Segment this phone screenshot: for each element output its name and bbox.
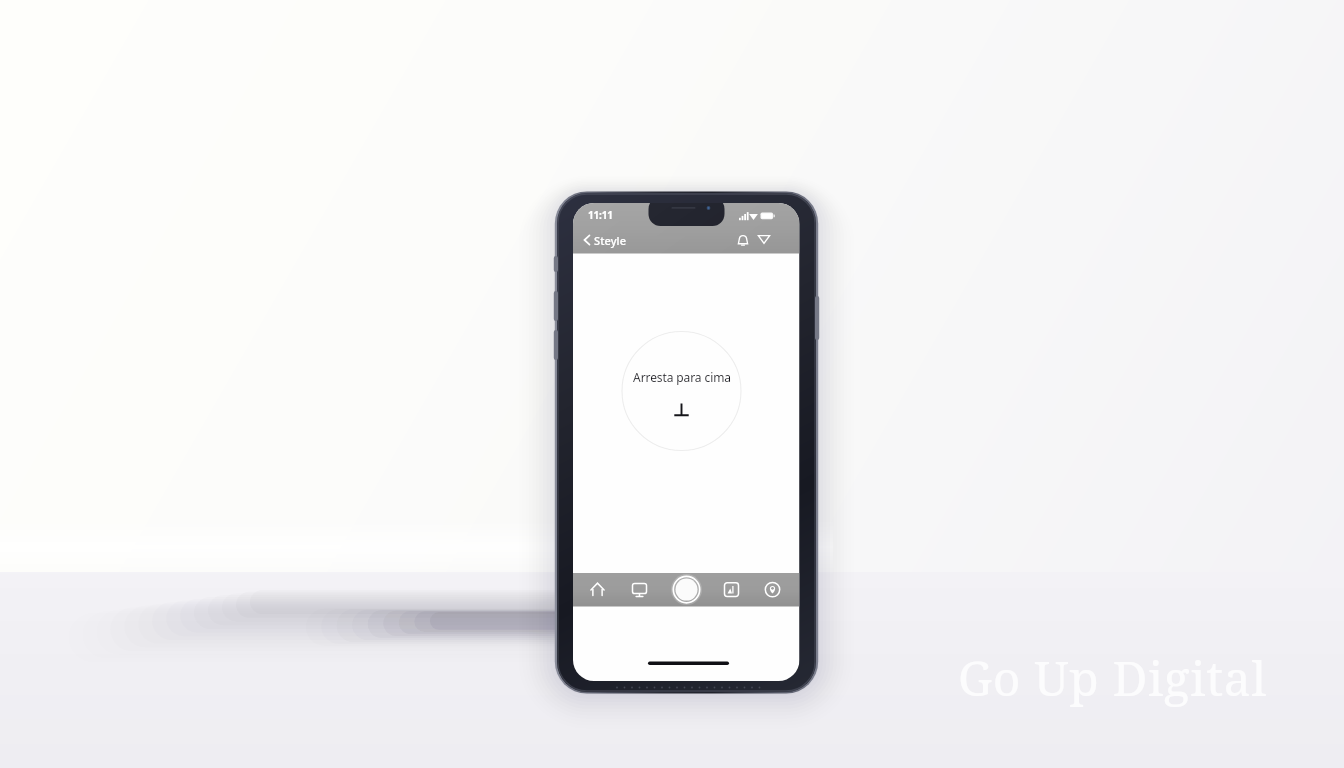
button[interactable]: Notificações <box>734 230 753 250</box>
staticText: Arresta para cima <box>633 369 731 385</box>
button[interactable]: Transmitir <box>626 573 660 607</box>
staticText: 11:11 <box>588 208 613 222</box>
button[interactable]: Galeria <box>713 573 747 607</box>
staticText: Steyle <box>594 233 627 248</box>
button[interactable]: Início <box>583 573 617 607</box>
button[interactable]: Steyle <box>578 230 627 250</box>
button[interactable]: Gravar <box>670 573 704 607</box>
staticText: Go Up Digital <box>958 645 1267 707</box>
button[interactable]: Locais <box>757 573 791 607</box>
button[interactable]: Mais opções <box>755 230 774 250</box>
button[interactable]: Arresta para cima <box>612 367 751 387</box>
